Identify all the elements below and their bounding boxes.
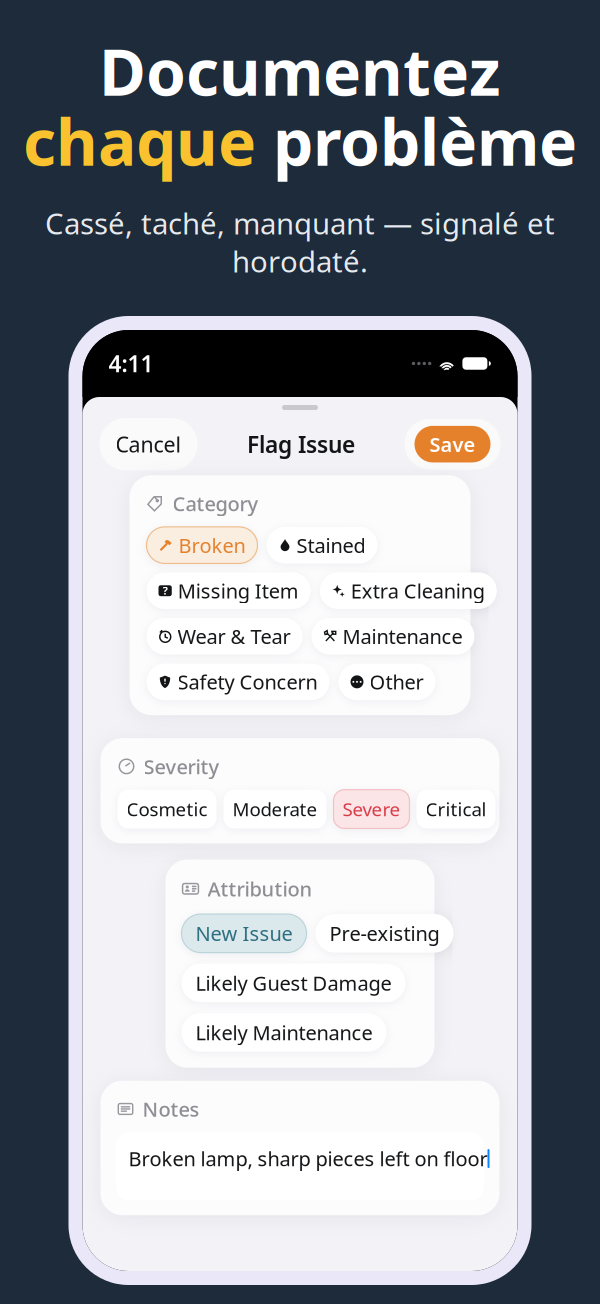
staticText: Severity	[143, 753, 219, 780]
button[interactable]: Pre-existing	[315, 914, 453, 953]
button[interactable]: Safety Concern	[146, 664, 329, 700]
staticText: horodaté.	[232, 241, 368, 280]
staticText: New Issue	[195, 920, 292, 947]
staticText: Stained	[296, 532, 365, 558]
button[interactable]: Moderate	[223, 790, 326, 828]
staticText: Severe	[342, 797, 400, 821]
button[interactable]: Other	[338, 664, 435, 700]
button[interactable]: Wear & Tear	[146, 618, 302, 655]
staticText: Category	[172, 490, 258, 517]
staticText: ?	[163, 584, 168, 598]
staticText: 4:11	[108, 348, 153, 378]
staticText: Extra Cleaning	[351, 577, 485, 604]
staticText: Broken	[178, 532, 245, 558]
staticText: Broken lamp, sharp pieces left on floor	[128, 1145, 487, 1172]
staticText: Moderate	[232, 797, 317, 821]
button[interactable]: Broken	[146, 527, 257, 563]
staticText: Missing Item	[178, 577, 299, 604]
staticText: Critical	[425, 797, 486, 821]
button[interactable]: Maintenance	[311, 618, 474, 655]
staticText: Wear & Tear	[177, 623, 290, 650]
button[interactable]: Critical	[416, 790, 495, 828]
staticText: Likely Maintenance	[195, 1019, 372, 1046]
staticText: Cosmetic	[126, 797, 207, 821]
button[interactable]: New Issue	[181, 914, 306, 953]
staticText: Flag Issue	[247, 429, 355, 459]
staticText: Documentez	[99, 28, 501, 113]
button[interactable]: Likely Maintenance	[181, 1013, 386, 1052]
staticText: Likely Guest Damage	[195, 970, 391, 996]
button[interactable]: Cosmetic	[117, 790, 216, 828]
button[interactable]: Severe	[333, 790, 409, 828]
button[interactable]: Extra Cleaning	[320, 572, 497, 609]
staticText: Notes	[142, 1096, 199, 1122]
staticText: Save	[429, 431, 475, 457]
button[interactable]: Cancel	[99, 418, 197, 470]
staticText: Other	[369, 669, 423, 695]
staticText: Pre-existing	[329, 920, 439, 947]
button[interactable]: Likely Guest Damage	[181, 964, 405, 1002]
button[interactable]: ?	[146, 572, 311, 609]
button[interactable]: Save	[404, 419, 500, 469]
staticText: Attribution	[207, 875, 312, 902]
staticText: problème	[273, 98, 577, 183]
staticText: Cassé, taché, manquant — signalé et	[45, 203, 555, 242]
staticText: Cancel	[115, 430, 181, 458]
staticText: Maintenance	[342, 623, 462, 650]
staticText: Safety Concern	[177, 669, 317, 695]
staticText: chaque	[23, 98, 273, 183]
button[interactable]: Stained	[266, 527, 377, 563]
